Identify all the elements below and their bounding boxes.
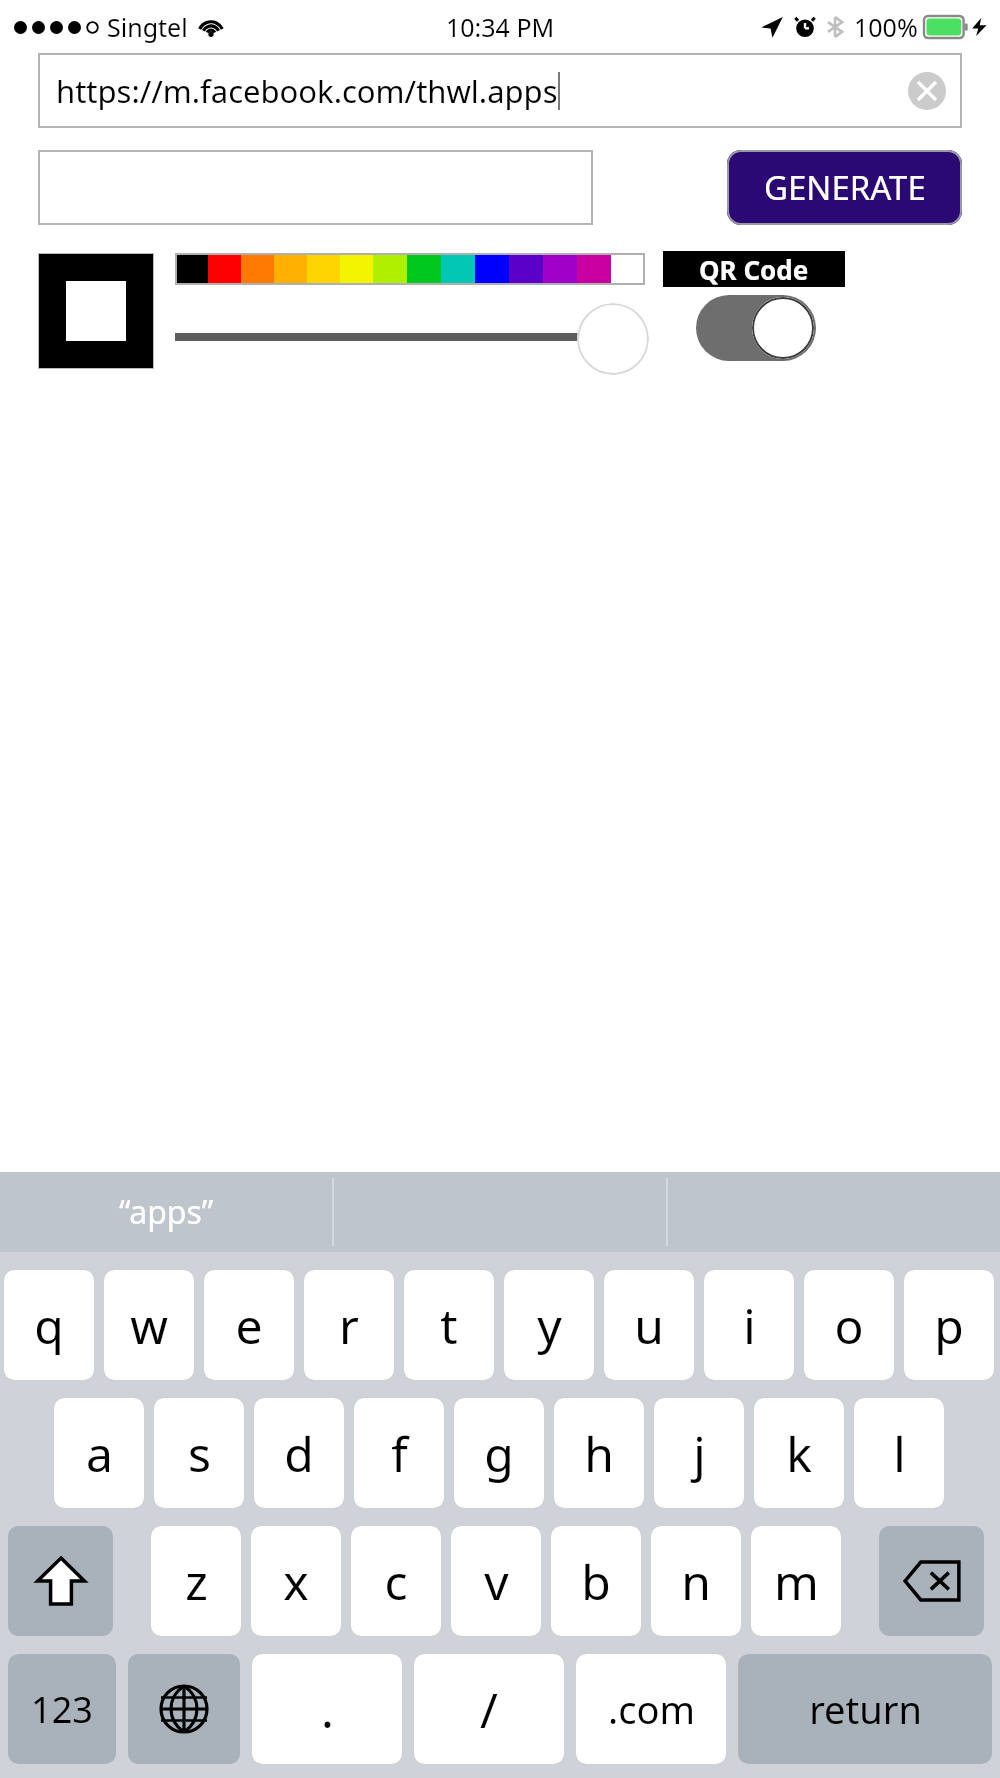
staticText: p xyxy=(934,1293,964,1358)
button[interactable]: Toggle QR code mode xyxy=(696,295,816,361)
button[interactable]: o xyxy=(804,1270,894,1380)
button[interactable]: g xyxy=(454,1398,544,1508)
staticText: 123 xyxy=(31,1685,93,1734)
staticText: b xyxy=(581,1549,611,1614)
button[interactable]: d xyxy=(254,1398,344,1508)
button[interactable] xyxy=(38,253,154,369)
staticText: return xyxy=(809,1683,922,1735)
staticText: c xyxy=(384,1549,408,1614)
button[interactable] xyxy=(38,150,593,225)
staticText: / xyxy=(480,1677,498,1742)
staticText: . xyxy=(321,1677,334,1742)
button[interactable]: h xyxy=(554,1398,644,1508)
button[interactable]: x xyxy=(251,1526,341,1636)
button[interactable]: f xyxy=(354,1398,444,1508)
button[interactable]: 123 xyxy=(8,1654,116,1764)
button[interactable]: p xyxy=(904,1270,994,1380)
button[interactable]: https://m.facebook.com/thwl.apps xyxy=(38,53,962,128)
staticText: y xyxy=(537,1293,562,1358)
staticText: e xyxy=(235,1293,263,1358)
button[interactable]: z xyxy=(151,1526,241,1636)
button[interactable]: GENERATE xyxy=(727,150,962,225)
button[interactable]: / xyxy=(414,1654,564,1764)
button[interactable] xyxy=(175,253,645,285)
button[interactable]: k xyxy=(754,1398,844,1508)
button[interactable]: “apps” xyxy=(0,1172,332,1252)
staticText: f xyxy=(391,1421,408,1486)
button[interactable]: n xyxy=(651,1526,741,1636)
staticText: i xyxy=(743,1293,756,1358)
button[interactable]: Shift xyxy=(8,1526,113,1636)
staticText: “apps” xyxy=(119,1190,214,1234)
staticText: https://m.facebook.com/thwl.apps xyxy=(56,70,558,112)
button[interactable]: . xyxy=(252,1654,402,1764)
staticText: d xyxy=(284,1421,314,1486)
staticText: m xyxy=(774,1549,819,1614)
button[interactable]: .com xyxy=(576,1654,726,1764)
staticText: h xyxy=(584,1421,614,1486)
staticText: 10:34 PM xyxy=(446,10,555,44)
staticText: z xyxy=(185,1549,208,1614)
button[interactable]: t xyxy=(404,1270,494,1380)
button[interactable]: q xyxy=(4,1270,94,1380)
staticText: g xyxy=(484,1421,514,1486)
button[interactable]: a xyxy=(54,1398,144,1508)
button[interactable]: s xyxy=(154,1398,244,1508)
staticText: r xyxy=(339,1293,359,1358)
staticText: k xyxy=(786,1421,812,1486)
button[interactable]: r xyxy=(304,1270,394,1380)
button[interactable]: b xyxy=(551,1526,641,1636)
button[interactable]: v xyxy=(451,1526,541,1636)
staticText: a xyxy=(86,1421,113,1486)
staticText: Singtel xyxy=(107,10,188,44)
staticText: 100% xyxy=(854,10,918,44)
button[interactable]: w xyxy=(104,1270,194,1380)
staticText: u xyxy=(634,1293,664,1358)
staticText: QR Code xyxy=(699,252,809,287)
button[interactable]: u xyxy=(604,1270,694,1380)
staticText: v xyxy=(484,1549,509,1614)
button[interactable]: y xyxy=(504,1270,594,1380)
staticText: j xyxy=(693,1421,706,1486)
staticText: w xyxy=(130,1293,168,1358)
button[interactable]: return xyxy=(738,1654,992,1764)
button[interactable]: Size slider xyxy=(577,303,649,375)
button[interactable]: Backspace xyxy=(879,1526,984,1636)
button[interactable]: l xyxy=(854,1398,944,1508)
button[interactable]: m xyxy=(751,1526,841,1636)
button[interactable]: Change keyboard language xyxy=(128,1654,240,1764)
staticText: l xyxy=(893,1421,906,1486)
staticText: s xyxy=(188,1421,211,1486)
staticText: x xyxy=(283,1549,309,1614)
button[interactable]: i xyxy=(704,1270,794,1380)
staticText: q xyxy=(34,1293,64,1358)
staticText: GENERATE xyxy=(764,165,926,210)
staticText: n xyxy=(681,1549,711,1614)
button[interactable]: j xyxy=(654,1398,744,1508)
button[interactable]: Clear text xyxy=(908,72,946,110)
button[interactable]: e xyxy=(204,1270,294,1380)
staticText: o xyxy=(834,1293,864,1358)
button[interactable]: c xyxy=(351,1526,441,1636)
staticText: .com xyxy=(608,1683,695,1735)
staticText: t xyxy=(440,1293,458,1358)
